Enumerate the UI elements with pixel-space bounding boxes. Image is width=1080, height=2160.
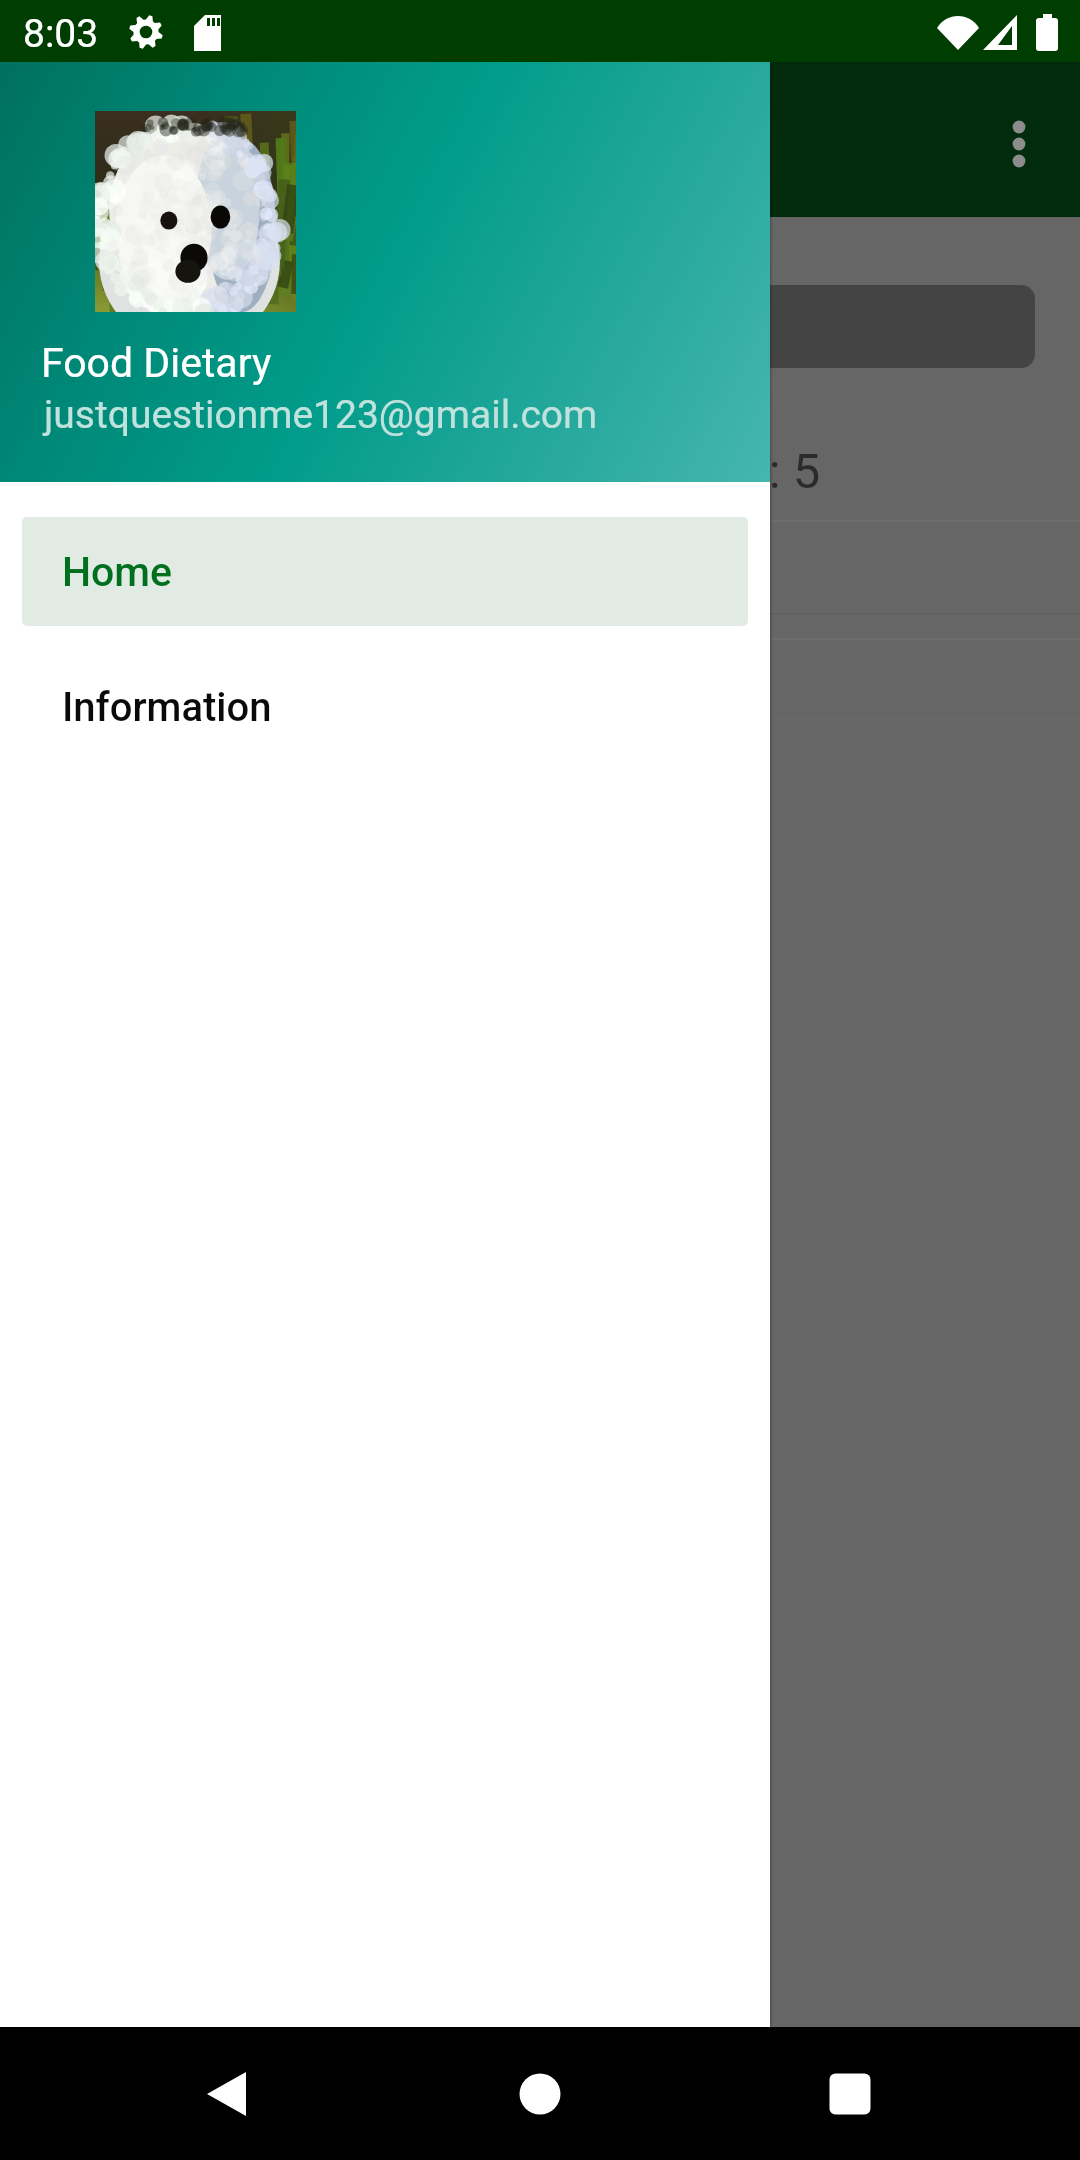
button[interactable]: Recent apps xyxy=(804,2048,896,2140)
button[interactable] xyxy=(44,285,1035,368)
button[interactable]: Home xyxy=(494,2048,586,2140)
staticText: justquestionme123@gmail.com xyxy=(44,392,598,438)
button[interactable]: Home xyxy=(22,517,748,626)
button[interactable]: Back xyxy=(180,2048,272,2140)
button[interactable]: More options xyxy=(971,92,1067,188)
staticText: Total Calories: 5 xyxy=(469,443,821,500)
button[interactable]: Information xyxy=(0,626,770,788)
staticText: Home xyxy=(62,548,173,596)
staticText: Food Dietary xyxy=(41,339,272,387)
staticText: 8:03 xyxy=(23,11,99,57)
staticText: Information xyxy=(62,684,272,731)
